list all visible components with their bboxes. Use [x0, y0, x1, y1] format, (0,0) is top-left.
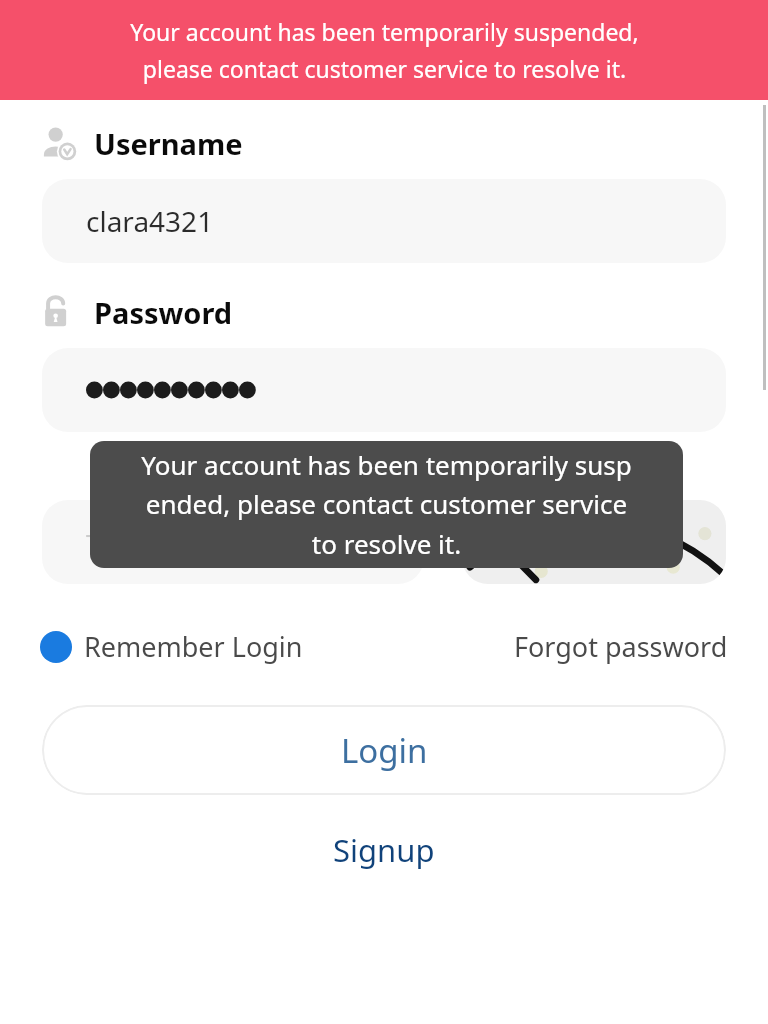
staticText: Your account has been temporarily susp e…	[141, 447, 632, 562]
staticText: Signup	[333, 829, 435, 871]
button[interactable]: Type the text	[42, 500, 424, 584]
button[interactable]: Captcha image, tap to refresh	[462, 500, 726, 584]
staticText: Login	[341, 728, 428, 773]
staticText: Username	[94, 124, 243, 163]
button[interactable]: Signup	[319, 823, 449, 877]
staticText: Your account has been temporarily suspen…	[130, 16, 639, 85]
button[interactable]: Login	[42, 705, 726, 795]
staticText: Password	[94, 293, 233, 332]
staticText: Forgot password	[514, 628, 728, 665]
button[interactable]: Forgot password	[514, 628, 728, 665]
staticText: clara4321	[86, 202, 214, 240]
button[interactable]: clara4321	[42, 179, 726, 263]
staticText: 1944	[548, 514, 649, 574]
button[interactable]	[42, 348, 726, 432]
button[interactable]: Remember Login	[40, 628, 303, 665]
staticText: Remember Login	[84, 628, 303, 665]
staticText: Type the text	[86, 525, 245, 560]
